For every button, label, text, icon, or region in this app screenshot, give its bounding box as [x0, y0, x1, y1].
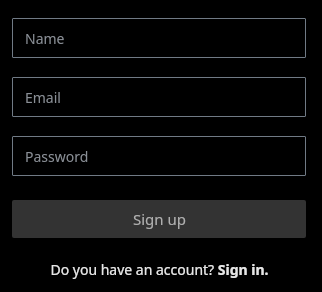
button[interactable]: Sign up	[12, 200, 306, 238]
staticText: Email	[25, 88, 61, 107]
staticText: Password	[25, 147, 89, 166]
staticText: Do you have an account? Sign in.	[50, 260, 269, 279]
button[interactable]: Email	[12, 77, 306, 117]
staticText: Name	[25, 29, 65, 48]
button[interactable]: Password	[12, 136, 306, 176]
button[interactable]: Sign in	[12, 260, 306, 279]
staticText: Sign up	[133, 209, 186, 229]
button[interactable]: Name	[12, 18, 306, 58]
